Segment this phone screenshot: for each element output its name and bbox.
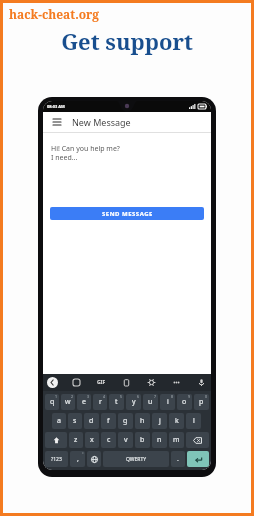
button[interactable]: r [93, 394, 107, 410]
button[interactable]: QWERTY [103, 451, 169, 467]
button[interactable]: j [152, 413, 167, 429]
button[interactable]: k [169, 413, 184, 429]
button[interactable]: a [52, 413, 66, 429]
staticText: Get support [0, 26, 254, 56]
staticText: n [157, 435, 162, 445]
staticText: 1 [55, 394, 58, 399]
button[interactable]: c [101, 432, 116, 448]
staticText: r [99, 397, 102, 407]
button[interactable]: enter [187, 451, 209, 467]
staticText: 8 [171, 394, 174, 399]
button[interactable]: settings [146, 377, 157, 388]
staticText: g [123, 416, 128, 426]
button[interactable]: mic [196, 377, 207, 388]
button[interactable]: s [68, 413, 82, 429]
staticText: . [177, 454, 179, 464]
staticText: t [115, 397, 118, 407]
staticText: s [73, 416, 77, 426]
button[interactable]: globe [87, 451, 101, 467]
staticText: 9 [188, 394, 191, 399]
button[interactable]: i [160, 394, 175, 410]
staticText: ?123 [51, 456, 62, 463]
staticText: p [199, 397, 204, 407]
button[interactable]: backspace [186, 432, 209, 448]
staticText: ° [82, 451, 84, 456]
button[interactable]: h [135, 413, 150, 429]
button[interactable]: , [70, 451, 85, 467]
button[interactable]: z [69, 432, 83, 448]
staticText: 0 [205, 394, 208, 399]
staticText: 6 [137, 394, 140, 399]
staticText: b [140, 435, 145, 445]
button[interactable]: ?123 [45, 451, 68, 467]
staticText: d [89, 416, 94, 426]
staticText: 08:03 AM [47, 104, 65, 109]
staticText: u [148, 397, 153, 407]
button[interactable]: GIF [95, 377, 108, 388]
staticText: z [74, 435, 78, 445]
button[interactable]: clipboard [121, 377, 132, 388]
staticText: m [173, 435, 180, 445]
staticText: e [82, 397, 86, 407]
button[interactable]: q [45, 394, 59, 410]
staticText: 5 [120, 394, 123, 399]
button[interactable]: m [169, 432, 184, 448]
staticText: k [175, 416, 179, 426]
button[interactable]: f [101, 413, 116, 429]
staticText: Hi! Can you help me? I need... [51, 144, 120, 162]
staticText: GIF [97, 379, 106, 386]
staticText: hack-cheat.org [9, 6, 100, 22]
staticText: QWERTY [126, 456, 147, 463]
button[interactable]: v [118, 432, 133, 448]
staticText: w [65, 397, 71, 407]
button[interactable]: l [186, 413, 201, 429]
button[interactable]: sticker [71, 377, 82, 388]
staticText: y [132, 397, 136, 407]
staticText: q [50, 397, 55, 407]
staticText: h [140, 416, 145, 426]
button[interactable]: . [171, 451, 185, 467]
button[interactable]: b [135, 432, 150, 448]
staticText: j [159, 416, 161, 426]
staticText: 4 [103, 394, 106, 399]
button[interactable]: t [109, 394, 124, 410]
staticText: a [57, 416, 61, 426]
button[interactable]: n [152, 432, 167, 448]
staticText: x [90, 435, 94, 445]
staticText: SEND MESSAGE [102, 210, 153, 218]
staticText: v [124, 435, 128, 445]
button[interactable]: p [194, 394, 209, 410]
staticText: i [167, 397, 169, 407]
button[interactable]: d [84, 413, 99, 429]
button[interactable]: more [171, 377, 182, 388]
button[interactable]: SEND MESSAGE [50, 207, 204, 220]
button[interactable]: u [143, 394, 158, 410]
staticText: f [107, 416, 110, 426]
button[interactable]: shift [45, 432, 67, 448]
button[interactable]: o [177, 394, 192, 410]
button[interactable]: x [85, 432, 99, 448]
staticText: , [77, 454, 79, 464]
staticText: 3 [87, 394, 90, 399]
staticText: o [182, 397, 187, 407]
staticText: l [193, 416, 195, 426]
button[interactable]: Back [47, 377, 58, 388]
staticText: 7 [154, 394, 157, 399]
button[interactable]: e [77, 394, 91, 410]
staticText: 2 [71, 394, 74, 399]
staticText: New Message [72, 116, 131, 128]
button[interactable]: w [61, 394, 75, 410]
button[interactable]: y [126, 394, 141, 410]
staticText: c [107, 435, 111, 445]
button[interactable]: g [118, 413, 133, 429]
button[interactable]: Menu [50, 115, 64, 129]
